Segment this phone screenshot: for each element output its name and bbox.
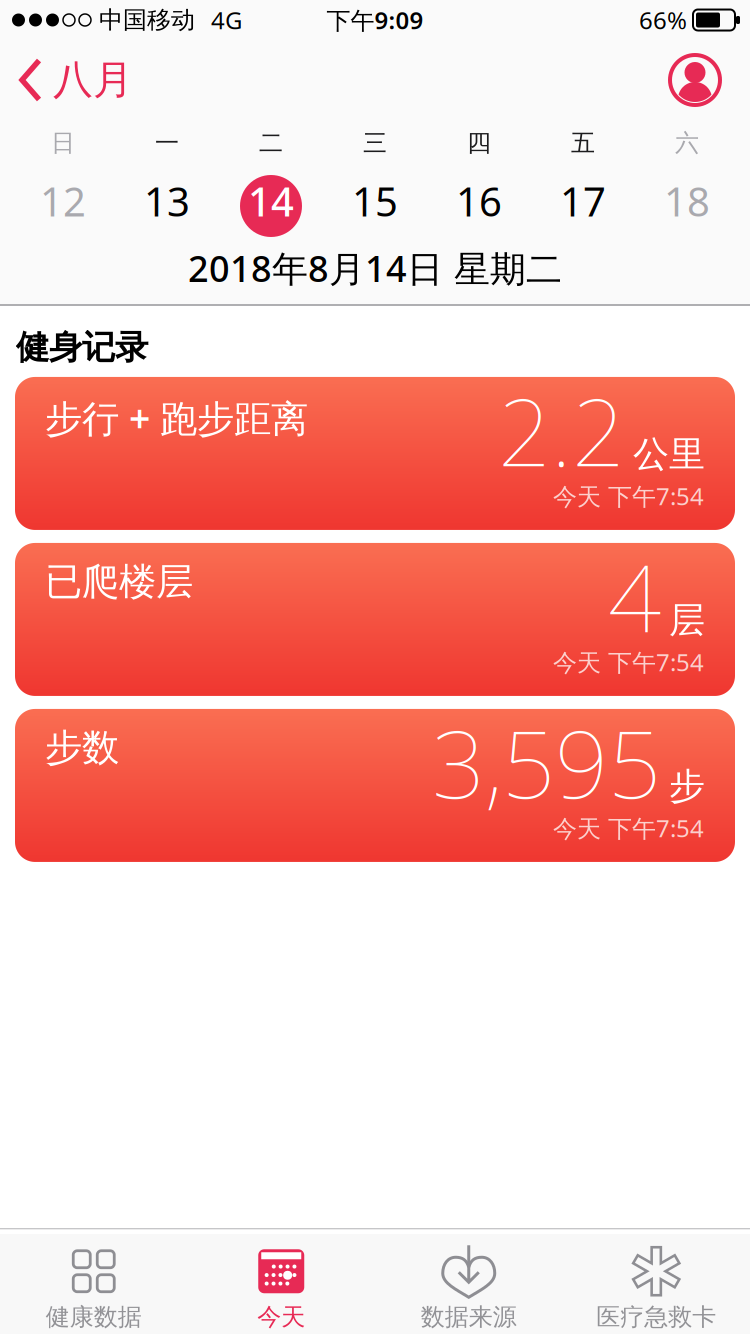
staticText: 层 bbox=[669, 598, 705, 642]
staticText: 下午9:09 bbox=[326, 4, 423, 36]
staticText: 今天 bbox=[257, 1302, 305, 1332]
staticText: 健身记录 bbox=[16, 327, 148, 368]
staticText: 4 bbox=[608, 534, 661, 658]
button[interactable]: 健康数据 bbox=[0, 1248, 187, 1332]
staticText: 18 bbox=[664, 174, 710, 227]
staticText: 2018年8月14日 星期二 bbox=[188, 244, 562, 292]
staticText: 4G bbox=[211, 4, 242, 36]
staticText: 3,595 bbox=[432, 700, 661, 824]
button[interactable]: 16 bbox=[427, 179, 531, 232]
staticText: 17 bbox=[560, 174, 606, 227]
button[interactable]: 18 bbox=[635, 179, 739, 232]
staticText: 13 bbox=[144, 174, 190, 227]
staticText: 日 bbox=[51, 128, 75, 158]
staticText: 今天 下午7:54 bbox=[553, 480, 704, 512]
staticText: 二 bbox=[259, 128, 283, 158]
staticText: 医疗急救卡 bbox=[596, 1302, 716, 1332]
staticText: 今天 下午7:54 bbox=[553, 812, 704, 844]
staticText: 五 bbox=[571, 128, 595, 158]
button[interactable]: 八月 bbox=[0, 55, 133, 104]
button[interactable]: 今天 bbox=[187, 1248, 375, 1332]
staticText: 2.2 bbox=[498, 368, 625, 492]
button[interactable]: 医疗急救卡 bbox=[562, 1248, 750, 1332]
staticText: 已爬楼层 bbox=[45, 559, 193, 605]
staticText: 今天 下午7:54 bbox=[553, 646, 704, 678]
button[interactable]: 17 bbox=[531, 179, 635, 232]
staticText: 步 bbox=[669, 764, 705, 808]
staticText: 步行 + 跑步距离 bbox=[45, 393, 308, 442]
button[interactable]: 步数 bbox=[15, 709, 735, 862]
staticText: 中国移动 bbox=[99, 5, 195, 35]
staticText: 步数 bbox=[45, 725, 119, 771]
staticText: 三 bbox=[363, 128, 387, 158]
staticText: 66% bbox=[639, 4, 687, 36]
staticText: 15 bbox=[352, 174, 398, 227]
staticText: 八月 bbox=[53, 55, 133, 104]
button[interactable]: 14 bbox=[219, 175, 323, 237]
button[interactable]: 数据来源 bbox=[375, 1248, 562, 1332]
staticText: 健康数据 bbox=[46, 1302, 142, 1332]
staticText: 公里 bbox=[633, 432, 705, 476]
staticText: 数据来源 bbox=[421, 1302, 517, 1332]
button[interactable]: 步行 + 跑步距离 bbox=[15, 377, 735, 530]
staticText: 六 bbox=[675, 128, 699, 158]
button[interactable]: 12 bbox=[11, 179, 115, 232]
staticText: 四 bbox=[467, 128, 491, 158]
staticText: 12 bbox=[40, 174, 86, 227]
staticText: 14 bbox=[248, 174, 294, 227]
staticText: 16 bbox=[456, 174, 502, 227]
staticText: 一 bbox=[155, 128, 179, 158]
button[interactable]: 13 bbox=[115, 179, 219, 232]
button[interactable] bbox=[670, 55, 750, 105]
button[interactable]: 15 bbox=[323, 179, 427, 232]
button[interactable]: 已爬楼层 bbox=[15, 543, 735, 696]
